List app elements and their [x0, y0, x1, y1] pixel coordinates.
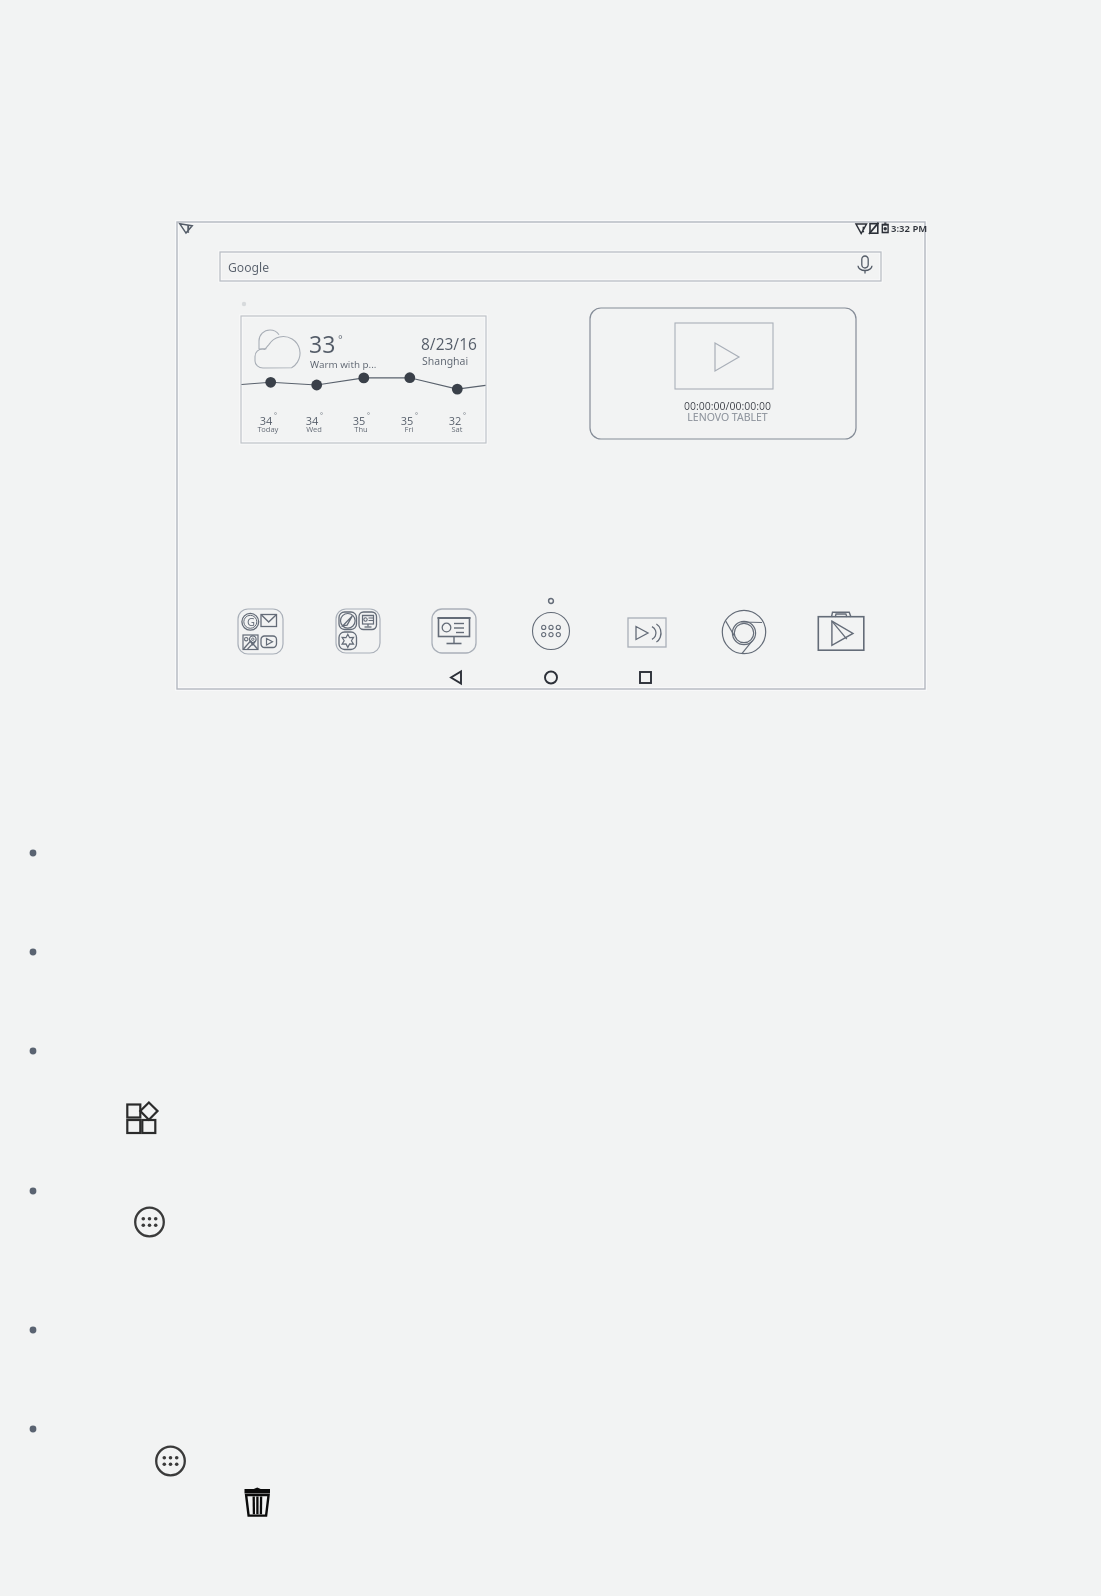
button[interactable]: Chrome [722, 610, 766, 654]
staticText: 3:32 PM [891, 222, 936, 237]
staticText: 32 [435, 413, 475, 431]
staticText: 35 [339, 413, 379, 431]
staticText: Thu [341, 424, 381, 436]
button[interactable]: Google search [220, 252, 881, 281]
staticText: Wed [294, 424, 334, 436]
staticText: ° [463, 411, 477, 422]
button[interactable]: Back [440, 668, 470, 690]
button[interactable]: Cast [628, 618, 666, 647]
staticText: 34 [246, 413, 286, 431]
staticText: ° [338, 331, 538, 349]
staticText: G [243, 614, 259, 632]
staticText: ° [320, 411, 334, 422]
staticText: ° [274, 411, 288, 422]
button[interactable]: Remove [244, 1486, 272, 1518]
staticText: ° [415, 411, 429, 422]
button[interactable]: Play Store [819, 610, 863, 654]
button[interactable]: Widgets [126, 1102, 158, 1133]
staticText: 33 [309, 328, 509, 365]
button[interactable]: All apps [135, 1207, 165, 1237]
staticText: Google [228, 259, 428, 279]
staticText: Shanghai [422, 354, 622, 371]
staticText: 00:00:00/00:00:00 [660, 399, 795, 416]
staticText: Warm with p... [310, 358, 510, 374]
staticText: LENOVO TABLET [660, 410, 795, 427]
staticText: ° [367, 411, 381, 422]
button[interactable]: All apps [533, 613, 569, 649]
button[interactable]: Slides [432, 609, 476, 653]
staticText: Today [248, 424, 288, 436]
button[interactable]: Home [536, 668, 566, 690]
staticText: 35 [387, 413, 427, 431]
staticText: Sat [437, 424, 477, 436]
staticText: 8/23/16 [421, 333, 621, 358]
button[interactable]: All apps [156, 1446, 186, 1476]
staticText: Fri [389, 424, 429, 436]
button[interactable]: Apps folder [336, 609, 380, 653]
button[interactable]: Recent apps [630, 668, 660, 690]
button[interactable]: Google apps folder [238, 609, 283, 654]
staticText: 34 [292, 413, 332, 431]
